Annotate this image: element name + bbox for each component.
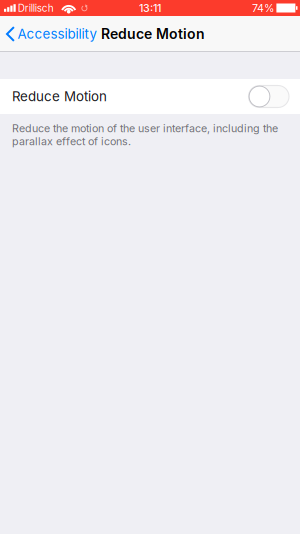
staticText: 74% (252, 1, 274, 14)
button[interactable]: Accessibility (0, 16, 102, 51)
staticText: Reduce the motion of the user interface,… (12, 122, 278, 148)
button[interactable]: Reduce Motion (0, 79, 300, 114)
staticText: Reduce Motion (12, 88, 107, 104)
staticText: Accessibility (17, 26, 96, 42)
staticText: Drillisch (18, 2, 54, 14)
staticText: 13:11 (139, 1, 161, 14)
staticText: Reduce Motion (101, 25, 205, 42)
